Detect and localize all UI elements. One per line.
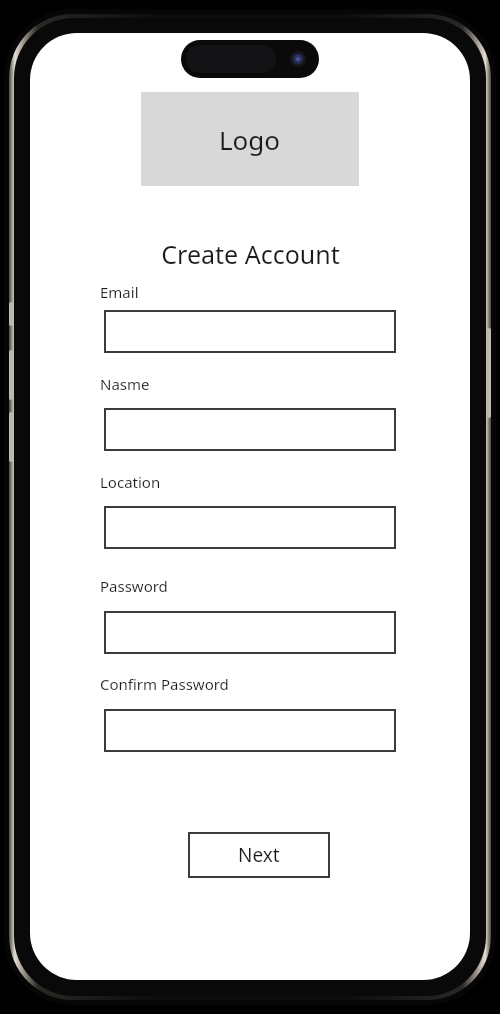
- button[interactable]: Next: [188, 832, 330, 878]
- staticText: Email: [100, 282, 139, 302]
- staticText: Nasme: [100, 374, 150, 394]
- staticText: Confirm Password: [100, 674, 229, 694]
- staticText: Logo: [219, 122, 281, 157]
- other: Ring silent switch: [9, 302, 13, 326]
- staticText: Next: [238, 842, 280, 868]
- button[interactable]: Confirm Password input: [104, 709, 396, 752]
- staticText: Location: [100, 472, 161, 492]
- staticText: Password: [100, 576, 168, 596]
- other: Power: [487, 328, 491, 418]
- button[interactable]: Location input: [104, 506, 396, 549]
- button[interactable]: Nasme input: [104, 408, 396, 451]
- staticText: Create Account: [161, 237, 340, 271]
- button[interactable]: Password input: [104, 611, 396, 654]
- other: Volume up: [9, 350, 13, 400]
- other: Volume down: [9, 412, 13, 462]
- button[interactable]: Email input: [104, 310, 396, 353]
